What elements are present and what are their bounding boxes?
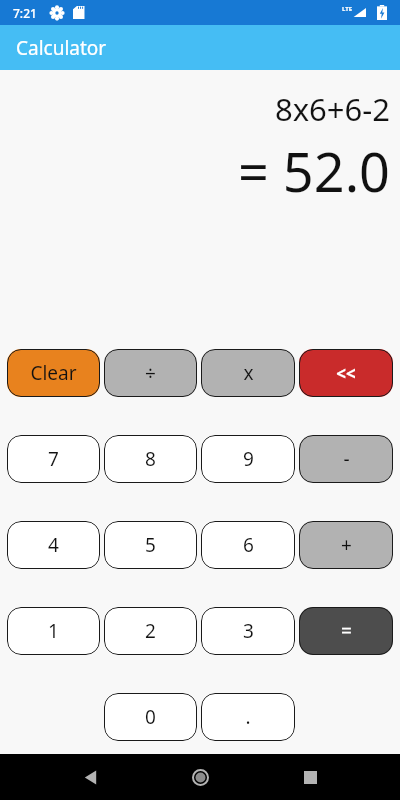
button[interactable]: 6 [201, 521, 295, 569]
staticText: 7 [48, 446, 59, 472]
staticText: + [341, 532, 352, 558]
staticText: 3 [243, 618, 254, 644]
button[interactable]: = [299, 607, 393, 655]
button[interactable]: Home [182, 759, 218, 795]
staticText: 2 [145, 618, 156, 644]
staticText: LTE [342, 5, 353, 13]
staticText: 6 [243, 532, 254, 558]
button[interactable]: 7 [7, 435, 100, 483]
button[interactable]: . [201, 693, 295, 741]
staticText: Clear [30, 360, 77, 386]
button[interactable]: 4 [7, 521, 100, 569]
staticText: << [336, 362, 356, 385]
staticText: - [343, 446, 350, 472]
staticText: 1 [48, 618, 59, 644]
button[interactable]: Clear [7, 349, 100, 397]
staticText: x [243, 360, 254, 386]
staticText: 7:21 [13, 5, 37, 21]
button[interactable]: ÷ [104, 349, 197, 397]
button[interactable]: 9 [201, 435, 295, 483]
button[interactable]: 8 [104, 435, 197, 483]
button[interactable]: 1 [7, 607, 100, 655]
button[interactable]: 5 [104, 521, 197, 569]
staticText: = [341, 618, 352, 644]
staticText: . [245, 704, 251, 730]
button[interactable]: << [299, 349, 393, 397]
button[interactable]: 2 [104, 607, 197, 655]
staticText: 9 [243, 446, 254, 472]
button[interactable]: Recent apps [293, 760, 327, 794]
button[interactable]: 0 [104, 693, 197, 741]
button[interactable]: Back [73, 760, 107, 794]
button[interactable]: 3 [201, 607, 295, 655]
button[interactable]: - [299, 435, 393, 483]
staticText: 0 [145, 704, 156, 730]
staticText: = 52.0 [237, 134, 390, 208]
button[interactable]: + [299, 521, 393, 569]
staticText: ÷ [145, 360, 156, 386]
staticText: 4 [48, 532, 59, 558]
staticText: 5 [145, 532, 156, 558]
button[interactable]: x [201, 349, 295, 397]
staticText: Calculator [16, 35, 107, 61]
staticText: 8 [145, 446, 156, 472]
staticText: 8x6+6-2 [274, 88, 390, 130]
